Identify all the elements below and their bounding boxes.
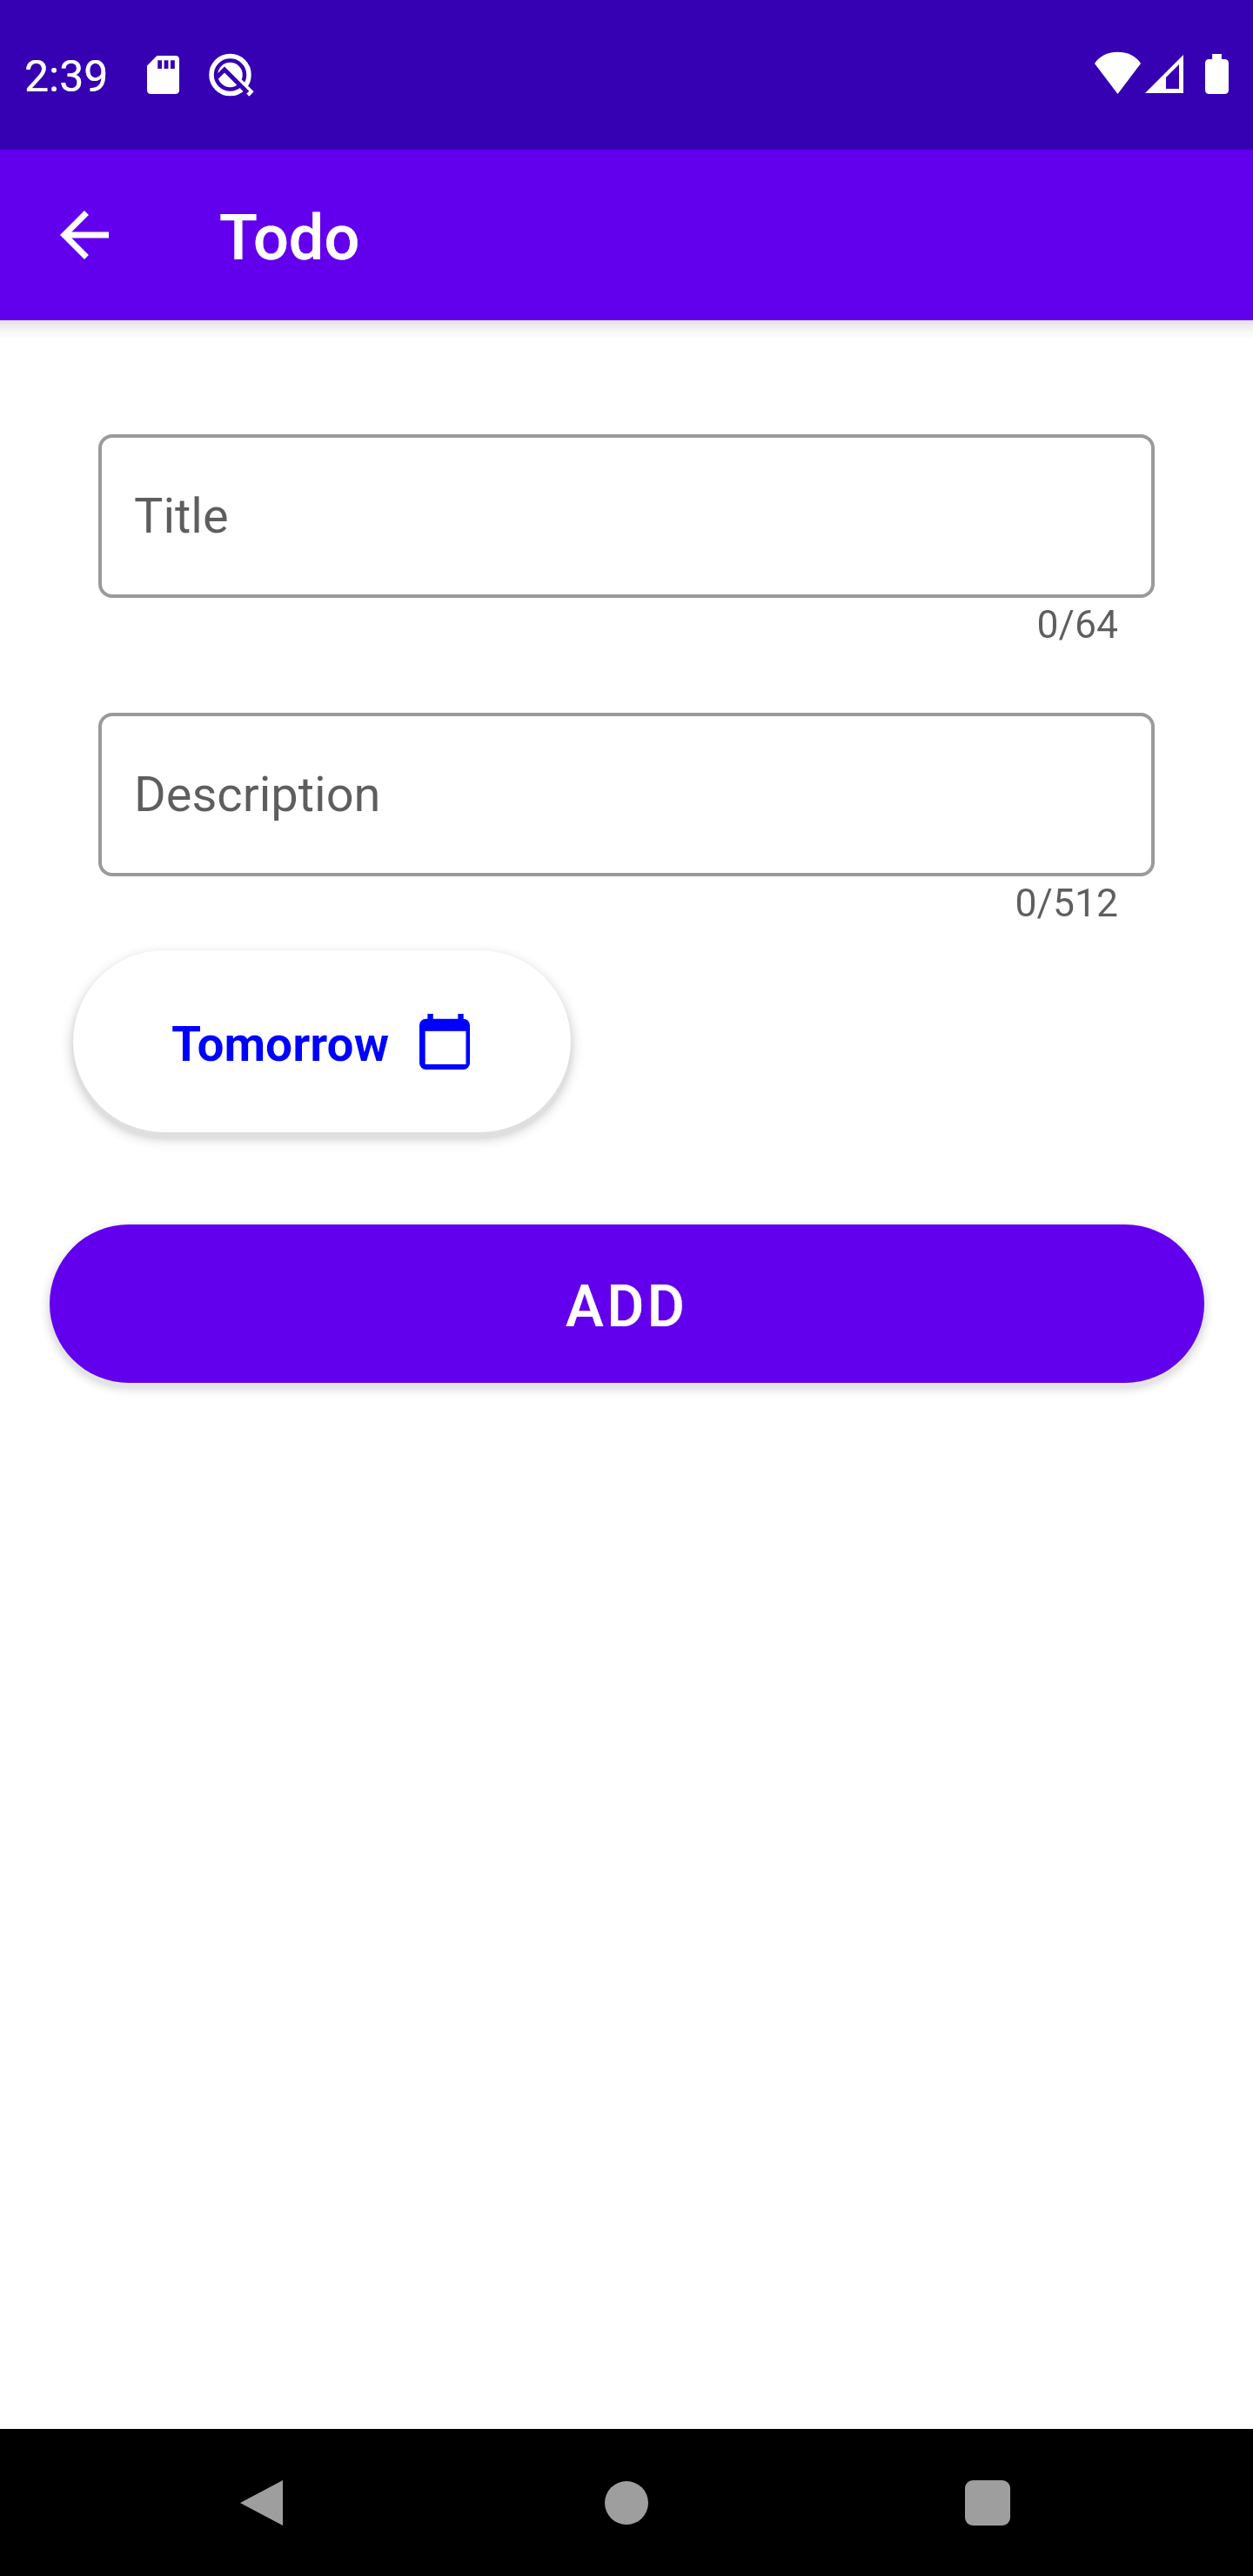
staticText: Title: [134, 487, 229, 545]
button[interactable]: Recents: [928, 2444, 1047, 2562]
staticText: 0/512: [0, 881, 1118, 926]
button[interactable]: ADD: [50, 1224, 1204, 1383]
staticText: 2:39: [24, 51, 109, 103]
button[interactable]: Back: [36, 186, 133, 284]
staticText: Tomorrow: [171, 1016, 390, 1072]
staticText: ADD: [566, 1273, 688, 1340]
button[interactable]: Tomorrow: [73, 950, 571, 1132]
button[interactable]: Home: [567, 2444, 686, 2562]
staticText: 0/64: [0, 602, 1118, 647]
button[interactable]: Back: [202, 2444, 320, 2562]
button[interactable]: Description: [98, 713, 1155, 876]
staticText: Description: [134, 766, 381, 823]
button[interactable]: Title: [98, 434, 1155, 598]
staticText: Todo: [219, 201, 360, 274]
